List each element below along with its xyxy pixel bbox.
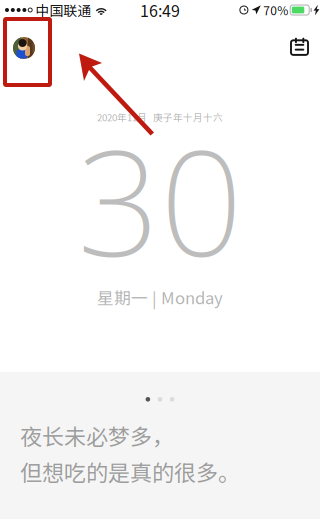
staticText: 30 <box>77 103 243 296</box>
button[interactable]: Notes <box>279 20 320 65</box>
staticText: 中国联通 <box>35 0 91 20</box>
staticText: 但想吃的是真的很多。 <box>20 455 240 487</box>
staticText: 星期一 | Monday <box>97 285 223 309</box>
staticText: 2020年11月 庚子年十月十六 <box>97 110 223 124</box>
staticText: 夜长未必梦多， <box>20 420 174 451</box>
staticText: 16:49 <box>140 0 180 22</box>
button[interactable]: Profile <box>0 20 47 67</box>
staticText: 70% <box>263 1 288 19</box>
